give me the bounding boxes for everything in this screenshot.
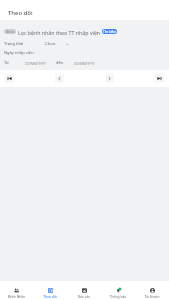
button[interactable]: Tài khoản [135,284,169,298]
staticText: Bỏ lọc [6,30,15,34]
button[interactable]: Thông báo [101,284,135,298]
staticText: Bệnh Nhân [0,294,33,298]
button[interactable]: Trang cuối [155,74,164,83]
staticText: Báo cáo [67,294,101,298]
button[interactable]: Bỏ lọc [4,29,16,34]
staticText: Theo dõi [33,294,67,298]
button[interactable]: Tìm kiếm [102,29,117,34]
button[interactable]: Bệnh Nhân [0,284,33,298]
staticText: Tìm kiếm [103,30,116,34]
button[interactable]: Trang đầu [5,74,14,83]
staticText: Tài khoản [135,294,169,298]
button[interactable]: Theo dõi [33,284,67,298]
button[interactable]: Trang sau [105,74,114,83]
staticText: DD/MM/YYYY [25,61,46,65]
staticText: Ngày nhập viện [4,50,34,56]
staticText: Lọc bệnh nhân theo TT nhập viện [18,29,101,36]
staticText: DD/MM/YYYY [74,61,95,65]
staticText: Theo dõi [8,9,33,17]
staticText: đến [56,60,64,66]
button[interactable]: Báo cáo [67,284,101,298]
staticText: -Chọn- [44,41,57,47]
staticText: Thông báo [101,294,135,298]
button[interactable]: Trang trước [55,74,64,83]
staticText: Trạng thái [4,41,24,47]
staticText: Từ [4,60,9,66]
